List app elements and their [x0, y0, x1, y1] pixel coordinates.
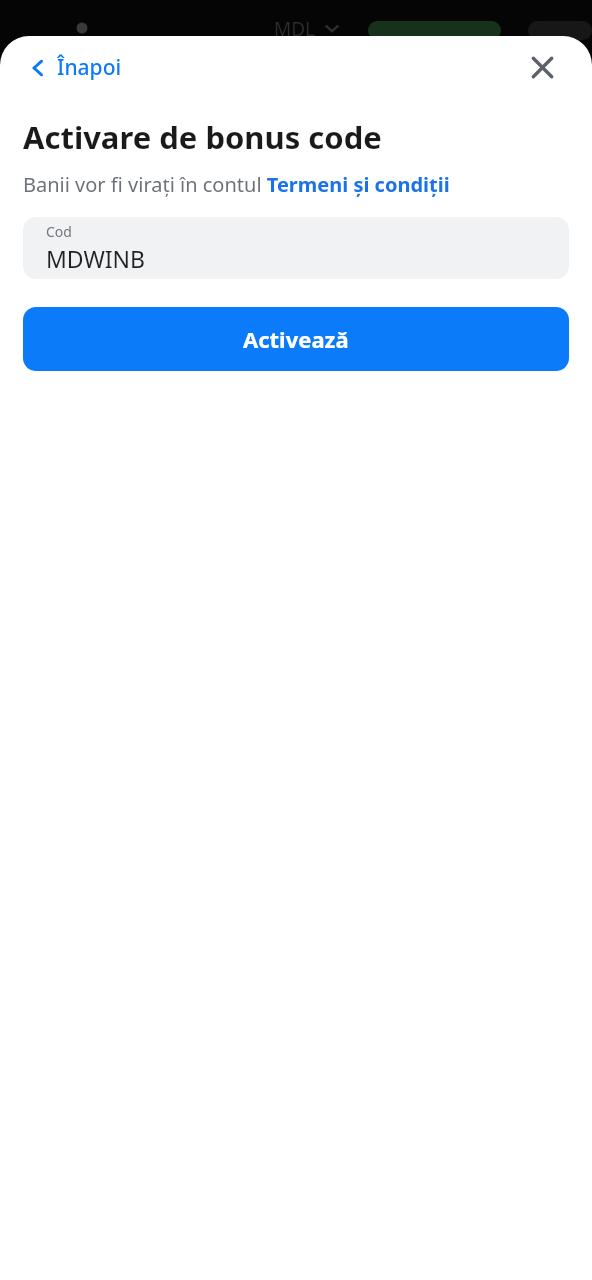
button[interactable]: Banii vor fi virați în contul Termeni și… [23, 171, 450, 198]
staticText: Cod [46, 222, 72, 241]
staticText: MDWINB [46, 243, 146, 274]
button[interactable]: Activează [23, 307, 569, 371]
button[interactable]: Înapoi [22, 47, 128, 88]
button[interactable]: Close [522, 47, 562, 87]
staticText: Activare de bonus code [23, 116, 382, 158]
staticText: Înapoi [57, 53, 122, 82]
staticText: Activează [243, 324, 349, 354]
button[interactable]: Cod [23, 217, 569, 279]
staticText: MDL [274, 16, 316, 40]
